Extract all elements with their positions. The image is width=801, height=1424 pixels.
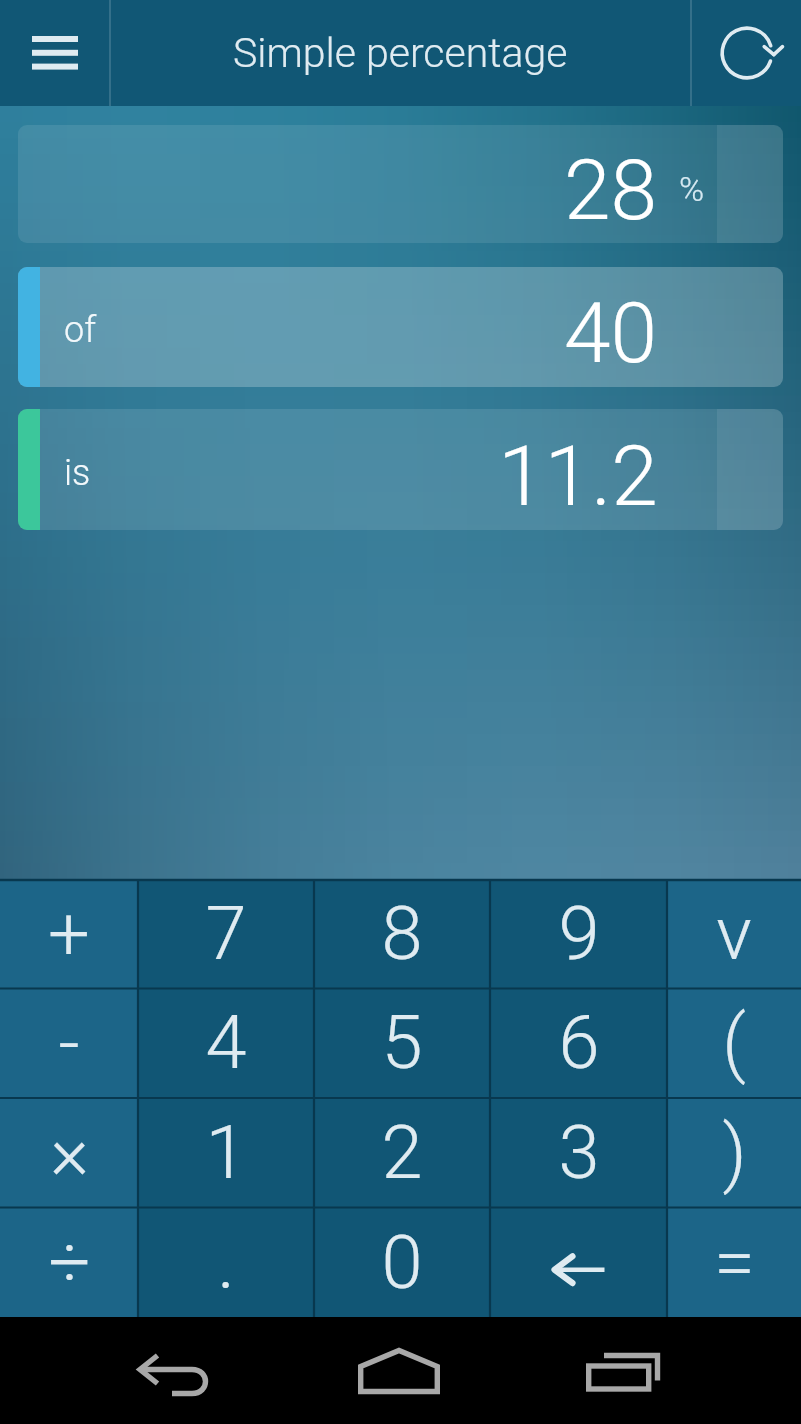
staticText: ÷ bbox=[48, 1219, 91, 1306]
button[interactable]: ( bbox=[667, 988, 801, 1097]
staticText: + bbox=[48, 890, 90, 977]
button[interactable]: Home bbox=[335, 1317, 465, 1424]
staticText: - bbox=[58, 999, 80, 1086]
staticText: is bbox=[64, 452, 91, 494]
staticText: . bbox=[217, 1219, 235, 1306]
staticText: 11.2 bbox=[498, 427, 658, 525]
button[interactable]: 4 bbox=[138, 988, 314, 1097]
button[interactable]: . bbox=[138, 1207, 314, 1317]
button[interactable]: ÷ bbox=[0, 1207, 138, 1317]
button[interactable]: 0 bbox=[314, 1207, 490, 1317]
staticText: 5 bbox=[381, 999, 423, 1086]
staticText: 1 bbox=[205, 1109, 247, 1196]
button[interactable]: 9 bbox=[490, 879, 667, 988]
button[interactable]: 28 bbox=[18, 125, 783, 243]
button[interactable]: Open navigation menu bbox=[0, 0, 109, 106]
staticText: 6 bbox=[558, 999, 600, 1086]
button[interactable]: 3 bbox=[490, 1097, 667, 1207]
button[interactable]: - bbox=[0, 988, 138, 1097]
button[interactable]: 2 bbox=[314, 1097, 490, 1207]
button[interactable]: is bbox=[18, 409, 783, 530]
staticText: 9 bbox=[558, 890, 600, 977]
button[interactable]: v bbox=[667, 879, 801, 988]
button[interactable]: + bbox=[0, 879, 138, 988]
button[interactable]: ) bbox=[667, 1097, 801, 1207]
staticText: 2 bbox=[381, 1109, 423, 1196]
staticText: × bbox=[50, 1109, 89, 1196]
staticText: Simple percentage bbox=[233, 29, 568, 77]
staticText: 4 bbox=[205, 999, 247, 1086]
button[interactable]: 7 bbox=[138, 879, 314, 988]
button[interactable]: 8 bbox=[314, 879, 490, 988]
button[interactable]: 1 bbox=[138, 1097, 314, 1207]
button[interactable]: 5 bbox=[314, 988, 490, 1097]
staticText: 40 bbox=[564, 284, 658, 382]
staticText: = bbox=[714, 1219, 755, 1306]
staticText: v bbox=[716, 890, 752, 977]
button[interactable]: Back bbox=[112, 1317, 242, 1424]
button[interactable]: Reset bbox=[692, 0, 801, 106]
button[interactable]: × bbox=[0, 1097, 138, 1207]
button[interactable]: 6 bbox=[490, 988, 667, 1097]
staticText: ) bbox=[722, 1109, 747, 1196]
staticText: 8 bbox=[381, 890, 423, 977]
button[interactable]: = bbox=[667, 1207, 801, 1317]
button[interactable]: Backspace bbox=[490, 1207, 667, 1317]
staticText: 7 bbox=[205, 890, 247, 977]
staticText: % bbox=[679, 169, 705, 209]
staticText: of bbox=[64, 309, 97, 351]
button[interactable]: Recent apps bbox=[559, 1317, 689, 1424]
staticText: 0 bbox=[381, 1219, 423, 1306]
button[interactable]: of bbox=[18, 267, 783, 387]
staticText: ( bbox=[722, 999, 746, 1086]
staticText: 3 bbox=[558, 1109, 600, 1196]
staticText: 28 bbox=[564, 141, 658, 239]
